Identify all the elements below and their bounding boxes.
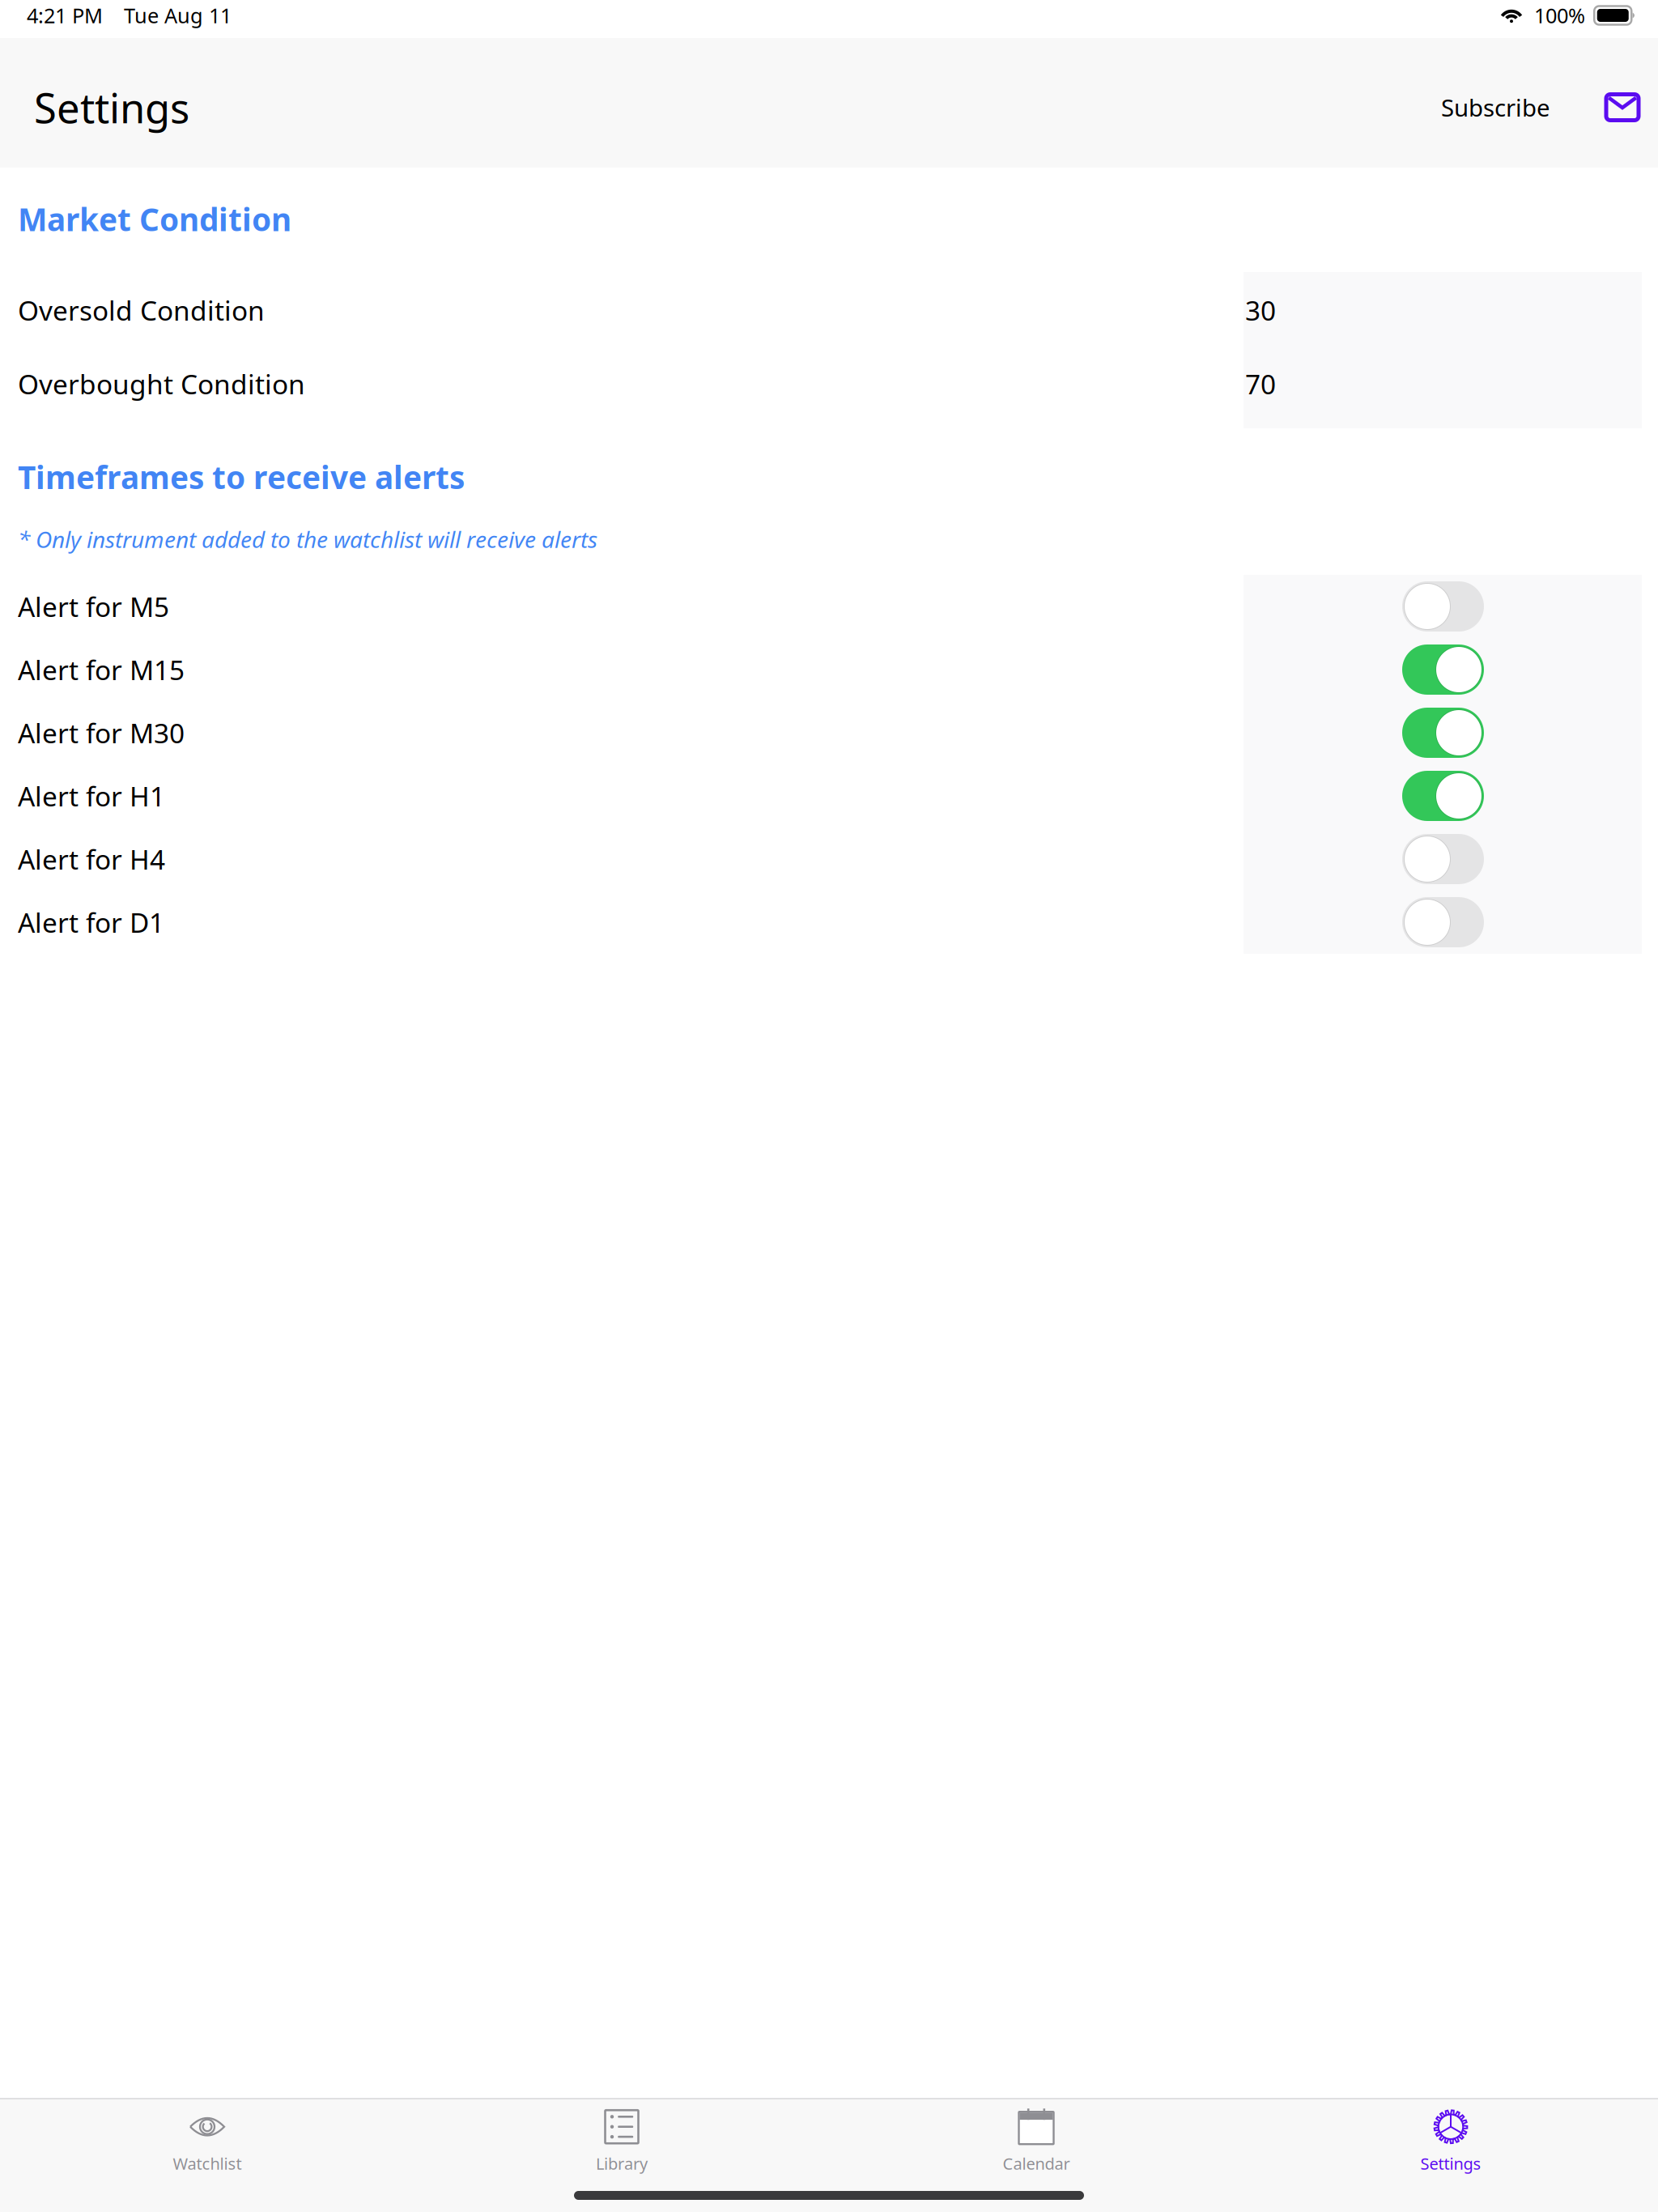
staticText: Alert for M30 — [18, 715, 185, 751]
staticText: Library — [596, 2153, 648, 2174]
staticText: Subscribe — [1441, 91, 1550, 123]
button[interactable]: Calendar — [829, 2099, 1243, 2180]
staticText: 4:21 PM — [27, 2, 103, 29]
staticText: * Only instrument added to the watchlist… — [18, 524, 597, 554]
staticText: 30 — [1245, 292, 1276, 328]
button[interactable]: Alert for H4 — [0, 827, 1658, 891]
button[interactable]: Settings — [1243, 2099, 1658, 2180]
button[interactable]: Alert for M5 — [0, 575, 1658, 638]
staticText: Timeframes to receive alerts — [18, 456, 465, 498]
staticText: Market Condition — [18, 198, 291, 240]
staticText: Alert for H1 — [18, 778, 165, 814]
staticText: Alert for M5 — [18, 589, 169, 624]
staticText: Oversold Condition — [18, 292, 265, 328]
staticText: 100% — [1534, 2, 1585, 29]
button[interactable]: Alert for M30 — [0, 701, 1658, 764]
staticText: 70 — [1245, 366, 1276, 402]
button[interactable]: Mail — [1588, 75, 1656, 140]
staticText: Watchlist — [173, 2153, 242, 2174]
button[interactable]: Overbought Condition — [0, 346, 1658, 422]
button[interactable]: Library — [414, 2099, 829, 2180]
staticText: Settings — [1420, 2153, 1481, 2174]
staticText: Overbought Condition — [18, 366, 305, 402]
button[interactable]: Watchlist — [0, 2099, 414, 2180]
staticText: Alert for M15 — [18, 652, 185, 688]
button[interactable]: Subscribe — [1428, 72, 1563, 143]
staticText: Tue Aug 11 — [124, 2, 232, 29]
staticText: Alert for D1 — [18, 904, 164, 940]
button[interactable]: Alert for D1 — [0, 891, 1658, 954]
button[interactable]: Alert for M15 — [0, 638, 1658, 701]
button[interactable]: Oversold Condition — [0, 270, 1658, 346]
staticText: Alert for H4 — [18, 841, 165, 877]
staticText: Settings — [34, 80, 189, 135]
button[interactable]: Alert for H1 — [0, 764, 1658, 827]
staticText: Calendar — [1003, 2153, 1070, 2174]
